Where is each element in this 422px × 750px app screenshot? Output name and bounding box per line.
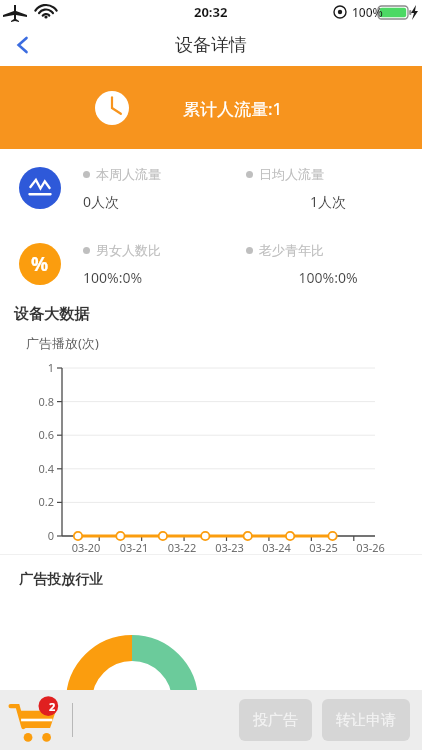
staticText: 1 [0,360,54,375]
button[interactable]: Back [0,24,46,66]
staticText: 03-23 [206,540,253,554]
staticText: 0.4 [0,461,54,476]
staticText: 设备详情 [175,34,247,57]
staticText: 2 [49,699,56,714]
staticText: 老少青年比 [259,242,324,258]
button[interactable]: 投广告 [239,699,312,741]
staticText: 转让申请 [336,711,396,730]
button[interactable]: 转让申请 [322,699,410,741]
staticText: 100%:0% [83,268,246,287]
staticText: 100% [352,4,383,20]
staticText: 100%:0% [246,268,410,287]
staticText: 0人次 [83,192,246,211]
staticText: 本周人流量 [96,166,161,182]
staticText: 广告投放行业 [19,571,103,589]
staticText: 03-20 [62,540,110,554]
staticText: 投广告 [253,711,298,730]
staticText: 03-25 [300,540,347,554]
staticText: 0.2 [0,494,54,509]
staticText: 累计人流量:1 [183,97,283,120]
staticText: 03-24 [253,540,300,554]
staticText: 03-22 [158,540,206,554]
staticText: 设备大数据 [14,305,89,324]
staticText: 20:32 [194,3,228,21]
staticText: 男女人数比 [96,242,161,258]
staticText: 0 [0,528,54,543]
staticText: 03-26 [347,540,394,554]
staticText: 0.8 [0,394,54,409]
staticText: 日均人流量 [259,166,324,182]
staticText: 1人次 [246,192,410,211]
button[interactable]: Cart [6,691,64,749]
staticText: 03-21 [110,540,158,554]
staticText: 0.6 [0,427,54,442]
staticText: 广告播放(次) [26,334,99,352]
staticText: % [31,251,49,277]
